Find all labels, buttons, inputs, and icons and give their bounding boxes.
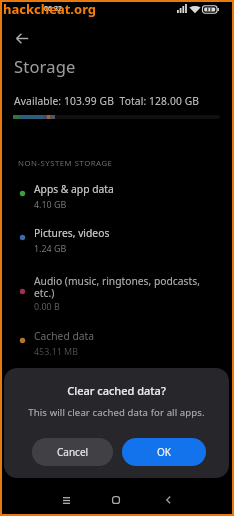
staticText: Cached data [34, 329, 95, 343]
staticText: hackcheat.org [3, 0, 97, 18]
staticText: Audio (music, ringtones, podcasts, [34, 274, 200, 288]
button[interactable]: Cancel [32, 438, 113, 466]
staticText: Cancel [57, 445, 89, 459]
staticText: Available: 103.99 GB Total: 128.00 GB [14, 94, 200, 108]
button[interactable]: Cached data [0, 328, 234, 368]
button[interactable]: Audio (music, ringtones, podcasts, [0, 272, 234, 318]
staticText: etc.) [34, 286, 55, 300]
staticText: OK [157, 445, 171, 459]
button[interactable] [103, 487, 129, 513]
staticText: 4.10 GB [34, 198, 67, 210]
staticText: Storage [14, 55, 76, 77]
staticText: 1.24 GB [34, 242, 67, 254]
staticText: 0.00 B [34, 300, 60, 312]
button[interactable]: Apps & app data [0, 181, 234, 221]
button[interactable]: Pictures, videos [0, 225, 234, 265]
staticText: 06:32 [44, 4, 62, 14]
staticText: Apps & app data [34, 182, 114, 196]
button[interactable] [53, 487, 79, 513]
button[interactable]: OK [122, 438, 206, 466]
staticText: 453.11 MB [34, 345, 78, 357]
button[interactable] [9, 28, 35, 48]
staticText: Clear cached data? [4, 383, 229, 398]
staticText: This will clear cached data for all apps… [4, 406, 229, 419]
button[interactable] [155, 487, 181, 513]
staticText: Pictures, videos [34, 226, 110, 240]
staticText: NON-SYSTEM STORAGE [18, 158, 113, 169]
